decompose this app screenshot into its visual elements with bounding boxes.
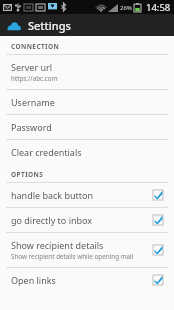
staticText: 14:58 — [146, 1, 171, 14]
staticText: Show recipient details — [11, 239, 104, 251]
button[interactable]: Clear credentials — [0, 140, 174, 164]
staticText: Open links — [11, 274, 56, 286]
staticText: OPTIONS — [11, 170, 44, 179]
button[interactable]: Show recipient details — [0, 233, 174, 267]
staticText: Server url — [11, 61, 53, 73]
button[interactable]: handle back button — [0, 183, 174, 207]
button[interactable]: go directly to inbox — [0, 208, 174, 232]
button[interactable]: Settings app bar — [0, 14, 174, 36]
button[interactable]: Server url — [0, 55, 174, 89]
staticText: https://abc.com — [11, 74, 58, 83]
button[interactable]: Password — [0, 115, 174, 139]
staticText: Username — [11, 96, 55, 108]
staticText: 26% — [120, 4, 132, 12]
button[interactable]: Username — [0, 90, 174, 114]
staticText: Password — [11, 121, 52, 133]
button[interactable]: Open links — [0, 268, 174, 292]
staticText: go directly to inbox — [11, 214, 93, 226]
staticText: Show recipient details while opening mai… — [11, 252, 134, 261]
staticText: CONNECTION — [11, 42, 60, 51]
staticText: handle back button — [11, 189, 94, 201]
staticText: Settings — [28, 18, 71, 33]
staticText: Clear credentials — [11, 146, 82, 158]
